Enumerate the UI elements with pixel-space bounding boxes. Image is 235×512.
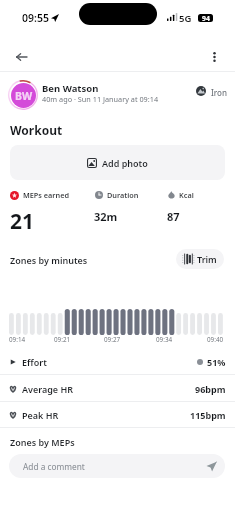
staticText: 51% xyxy=(207,356,226,368)
staticText: Peak HR xyxy=(22,409,59,421)
other: Send xyxy=(206,461,217,472)
staticText: 40m ago · Sun 11 January at 09:14 xyxy=(42,94,159,104)
staticText: Zones by MEPs xyxy=(10,436,75,448)
staticText: BW xyxy=(15,89,33,103)
button[interactable]: Peak HR xyxy=(0,401,235,428)
button[interactable]: Average HR xyxy=(0,375,235,402)
button[interactable]: Effort xyxy=(0,348,235,375)
button[interactable]: Back xyxy=(10,46,32,68)
button[interactable]: Add a comment xyxy=(9,454,225,478)
staticText: 09:55 xyxy=(22,11,49,25)
staticText: 115bpm xyxy=(190,409,226,421)
staticText: Add a comment xyxy=(23,461,85,472)
staticText: 94 xyxy=(202,14,210,22)
staticText: Iron xyxy=(211,87,227,98)
staticText: Ben Watson xyxy=(42,82,99,95)
staticText: 87 xyxy=(167,209,180,224)
button[interactable]: Add photo xyxy=(10,145,225,180)
staticText: Duration xyxy=(107,190,139,200)
staticText: Add photo xyxy=(102,157,148,169)
staticText: Effort xyxy=(22,356,47,368)
staticText: MEPs earned xyxy=(23,190,70,200)
staticText: 09:21 xyxy=(54,335,71,344)
staticText: Kcal xyxy=(179,190,194,200)
staticText: 32m xyxy=(94,209,118,224)
staticText: 21 xyxy=(10,207,35,236)
staticText: Trim xyxy=(197,253,217,265)
staticText: 09:14 xyxy=(9,335,26,344)
staticText: Zones by minutes xyxy=(10,254,88,266)
staticText: 09:40 xyxy=(207,335,224,344)
button[interactable]: Trim xyxy=(176,249,224,269)
staticText: 09:34 xyxy=(156,335,173,344)
staticText: 96bpm xyxy=(195,383,226,395)
button[interactable]: More options xyxy=(205,48,223,66)
staticText: Workout xyxy=(10,122,63,138)
staticText: Average HR xyxy=(22,383,74,395)
staticText: 09:27 xyxy=(104,335,121,344)
staticText: 5G xyxy=(179,12,192,25)
